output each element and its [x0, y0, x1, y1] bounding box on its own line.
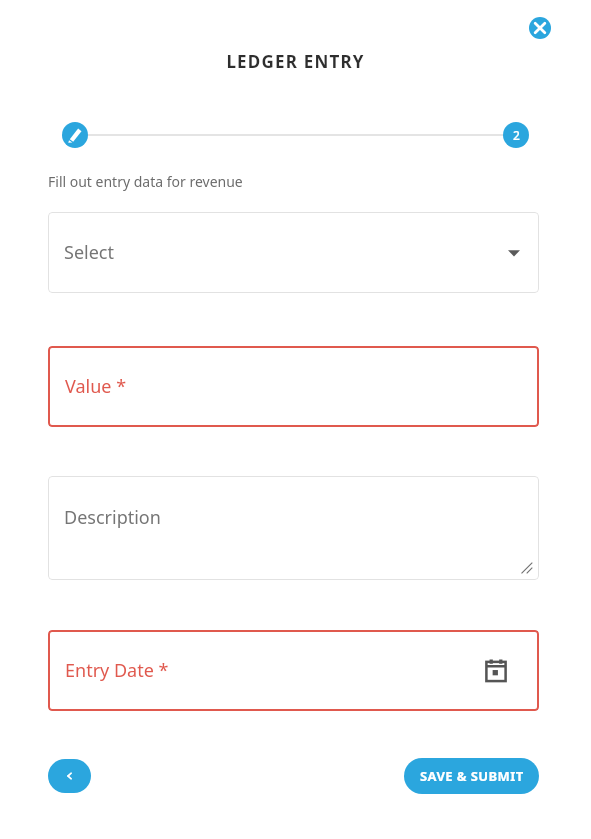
button[interactable]: Back [48, 759, 91, 793]
staticText: LEDGER ENTRY [0, 50, 591, 73]
button[interactable]: Step 1, edit entry [62, 122, 88, 148]
staticText: SAVE & SUBMIT [420, 767, 524, 785]
staticText: Entry Date * [65, 658, 169, 683]
staticText: Value * [65, 374, 127, 399]
staticText: Description [64, 505, 161, 530]
button[interactable]: SAVE & SUBMIT [404, 758, 539, 794]
button[interactable]: Close [529, 17, 551, 39]
button[interactable]: Value * [48, 346, 539, 427]
button[interactable]: 2 [503, 122, 529, 148]
button[interactable]: Select [48, 212, 539, 293]
staticText: Select [64, 240, 114, 265]
button[interactable]: Description [48, 476, 539, 580]
button[interactable]: Pick date [484, 659, 508, 683]
staticText: 2 [513, 127, 520, 143]
staticText: Fill out entry data for revenue [48, 172, 243, 191]
button[interactable]: Entry Date * [48, 630, 539, 711]
